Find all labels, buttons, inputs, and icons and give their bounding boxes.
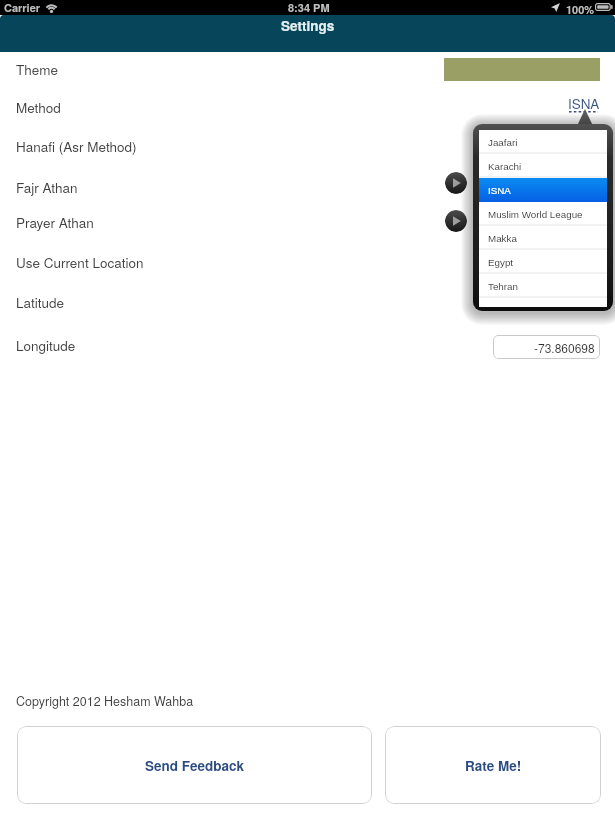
button[interactable]: Rate Me! [385, 726, 601, 804]
staticText: Rate Me! [465, 756, 522, 775]
staticText: Copyright 2012 Hesham Wahba [16, 692, 194, 710]
staticText: 8:34 PM [288, 0, 330, 15]
button[interactable]: -73.860698 [493, 335, 600, 359]
staticText: Carrier [4, 0, 41, 15]
button[interactable]: Method [16, 98, 61, 117]
button[interactable]: Latitude [16, 293, 65, 312]
staticText: Karachi [488, 161, 522, 172]
button[interactable]: Fajr Athan [16, 178, 78, 197]
staticText: 100% [566, 2, 595, 17]
staticText: Muslim World League [488, 209, 583, 220]
button[interactable]: Play athan [445, 210, 467, 232]
button[interactable]: Play athan [445, 172, 467, 194]
button[interactable]: Prayer Athan [16, 213, 94, 232]
button[interactable]: Hanafi (Asr Method) [16, 137, 137, 156]
button[interactable]: Makka [479, 226, 607, 250]
staticText: ISNA [488, 185, 511, 196]
staticText: -73.860698 [534, 339, 595, 356]
button[interactable]: Use Current Location [16, 253, 144, 272]
staticText: Send Feedback [145, 756, 245, 775]
staticText: Jaafari [488, 137, 518, 148]
button[interactable]: Jaafari [479, 130, 607, 154]
staticText: Settings [281, 16, 335, 35]
staticText: ISNA [568, 94, 599, 113]
button[interactable]: Karachi [479, 154, 607, 178]
button[interactable]: ISNA [568, 93, 599, 112]
button[interactable]: Egypt [479, 250, 607, 274]
button[interactable]: Send Feedback [17, 726, 372, 804]
button[interactable]: Muslim World League [479, 202, 607, 226]
staticText: Egypt [488, 257, 514, 268]
button[interactable]: Longitude [16, 336, 76, 355]
button[interactable]: ISNA [479, 178, 607, 202]
staticText: Tehran [488, 281, 518, 292]
button[interactable]: Tehran [479, 274, 607, 298]
button[interactable]: Theme [16, 60, 59, 79]
staticText: Makka [488, 233, 517, 244]
